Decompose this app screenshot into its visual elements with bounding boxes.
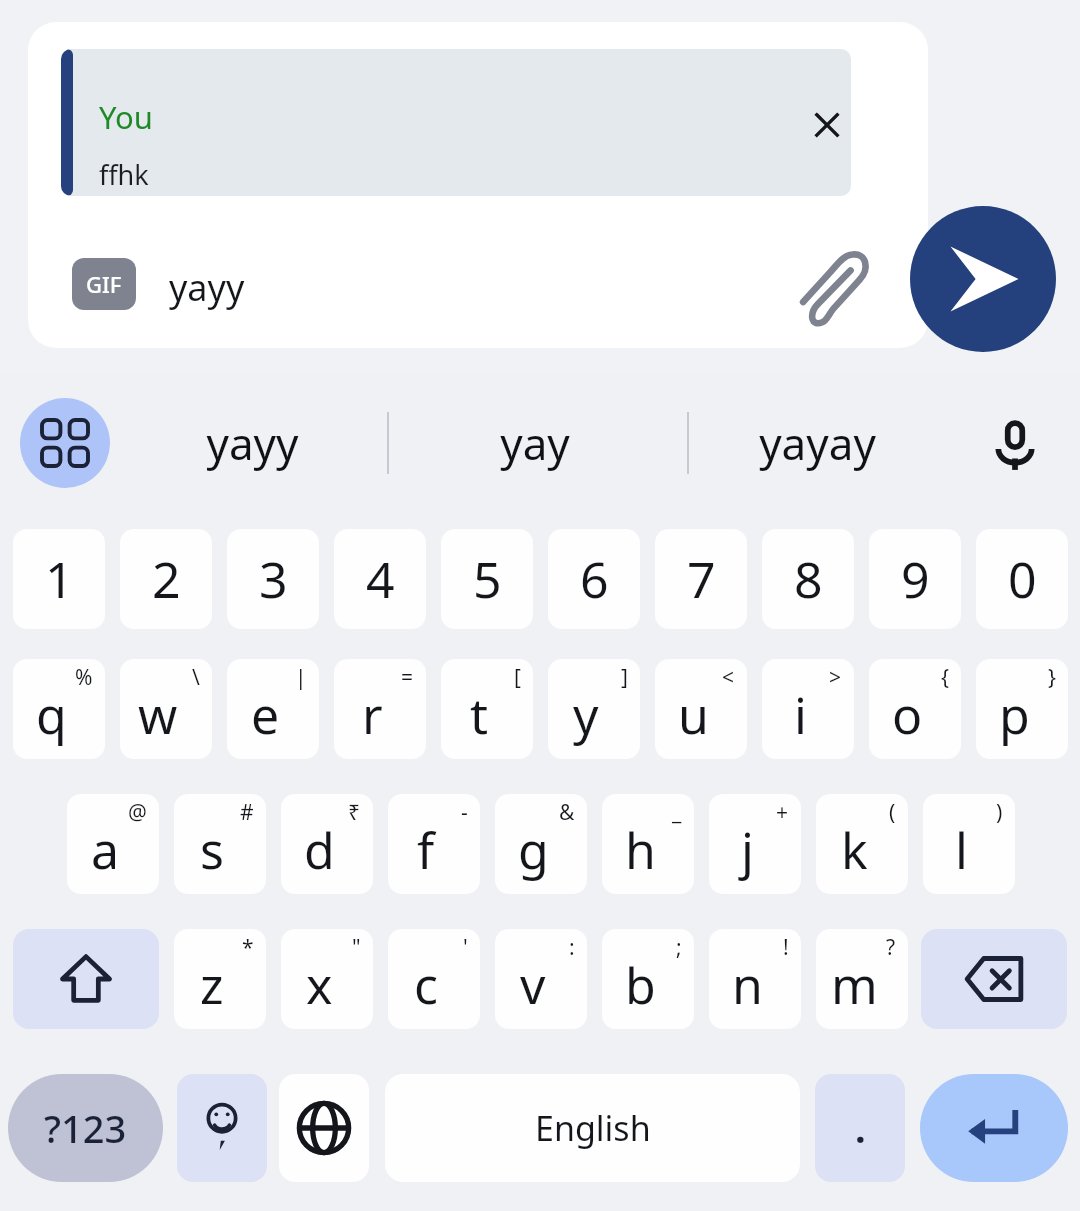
button[interactable]: b bbox=[602, 929, 694, 1029]
staticText: a bbox=[91, 816, 120, 884]
staticText: 4 bbox=[366, 545, 395, 613]
staticText: yayy bbox=[169, 263, 245, 312]
button[interactable]: z bbox=[174, 929, 266, 1029]
staticText: c bbox=[414, 951, 438, 1019]
staticText: + bbox=[776, 798, 789, 827]
button[interactable]: f bbox=[388, 794, 480, 894]
button[interactable]: 8 bbox=[762, 529, 854, 629]
button[interactable]: 0 bbox=[976, 529, 1068, 629]
staticText: yay bbox=[500, 413, 570, 473]
button[interactable]: More options bbox=[20, 398, 110, 488]
button[interactable]: r bbox=[334, 659, 426, 759]
button[interactable]: o bbox=[869, 659, 961, 759]
staticText: yayy bbox=[206, 413, 299, 473]
button[interactable]: yayay bbox=[697, 380, 937, 506]
button[interactable]: Shift bbox=[13, 929, 159, 1029]
staticText: i bbox=[794, 681, 807, 749]
button[interactable]: Backspace bbox=[921, 929, 1067, 1029]
staticText: You bbox=[99, 96, 153, 138]
staticText: ? bbox=[886, 933, 896, 962]
staticText: p bbox=[999, 681, 1030, 749]
staticText: ; bbox=[676, 933, 682, 962]
button[interactable]: 6 bbox=[548, 529, 640, 629]
staticText: h bbox=[625, 816, 656, 884]
staticText: \ bbox=[192, 663, 200, 692]
button[interactable]: 5 bbox=[441, 529, 533, 629]
button[interactable]: i bbox=[762, 659, 854, 759]
staticText: e bbox=[251, 681, 280, 749]
staticText: t bbox=[470, 681, 489, 749]
button[interactable]: You bbox=[61, 49, 851, 196]
button[interactable]: . bbox=[815, 1074, 905, 1182]
button[interactable]: 2 bbox=[120, 529, 212, 629]
button[interactable]: c bbox=[388, 929, 480, 1029]
staticText: f bbox=[417, 816, 435, 884]
button[interactable]: yay bbox=[415, 380, 655, 506]
staticText: 0 bbox=[1008, 545, 1037, 613]
staticText: . bbox=[855, 1102, 866, 1154]
staticText: k bbox=[841, 816, 868, 884]
button[interactable]: y bbox=[548, 659, 640, 759]
staticText: y bbox=[573, 681, 599, 749]
staticText: > bbox=[829, 663, 842, 692]
staticText: s bbox=[200, 816, 224, 884]
staticText: ( bbox=[889, 798, 896, 827]
button[interactable]: q bbox=[13, 659, 105, 759]
button[interactable]: 3 bbox=[227, 529, 319, 629]
staticText: 6 bbox=[580, 545, 609, 613]
button[interactable]: h bbox=[602, 794, 694, 894]
button[interactable]: yayy bbox=[132, 380, 372, 506]
staticText: - bbox=[461, 798, 468, 827]
button[interactable]: k bbox=[816, 794, 908, 894]
button[interactable]: m bbox=[816, 929, 908, 1029]
button[interactable]: v bbox=[495, 929, 587, 1029]
button[interactable]: p bbox=[976, 659, 1068, 759]
button[interactable]: 7 bbox=[655, 529, 747, 629]
button[interactable]: a bbox=[67, 794, 159, 894]
staticText: : bbox=[569, 933, 575, 962]
button[interactable]: w bbox=[120, 659, 212, 759]
button[interactable]: Change language bbox=[279, 1074, 369, 1182]
button[interactable]: x bbox=[281, 929, 373, 1029]
staticText: 2 bbox=[152, 545, 181, 613]
button[interactable]: Emoji bbox=[177, 1074, 267, 1182]
staticText: ) bbox=[996, 798, 1003, 827]
button[interactable]: Close reply bbox=[803, 101, 851, 149]
button[interactable]: 4 bbox=[334, 529, 426, 629]
button[interactable]: l bbox=[923, 794, 1015, 894]
button[interactable]: GIF bbox=[72, 258, 136, 310]
staticText: = bbox=[401, 663, 414, 692]
button[interactable]: j bbox=[709, 794, 801, 894]
staticText: yayay bbox=[759, 413, 876, 473]
staticText: ' bbox=[463, 933, 468, 962]
button[interactable]: English bbox=[385, 1074, 800, 1182]
staticText: English bbox=[535, 1105, 651, 1151]
staticText: ₹ bbox=[348, 798, 361, 827]
button[interactable]: 1 bbox=[13, 529, 105, 629]
button[interactable]: Send bbox=[910, 206, 1056, 352]
staticText: b bbox=[625, 951, 656, 1019]
button[interactable]: s bbox=[174, 794, 266, 894]
button[interactable]: t bbox=[441, 659, 533, 759]
button[interactable]: Attach file bbox=[785, 240, 881, 336]
staticText: n bbox=[732, 951, 763, 1019]
staticText: ] bbox=[621, 663, 628, 692]
staticText: & bbox=[559, 798, 575, 827]
button[interactable]: Voice input bbox=[967, 398, 1063, 494]
staticText: _ bbox=[672, 798, 682, 827]
button[interactable]: 9 bbox=[869, 529, 961, 629]
staticText: u bbox=[678, 681, 709, 749]
staticText: } bbox=[1048, 663, 1056, 692]
staticText: { bbox=[941, 663, 949, 692]
button[interactable]: Enter bbox=[920, 1074, 1068, 1182]
button[interactable]: g bbox=[495, 794, 587, 894]
button[interactable]: e bbox=[227, 659, 319, 759]
button[interactable]: d bbox=[281, 794, 373, 894]
staticText: % bbox=[75, 663, 93, 692]
staticText: < bbox=[722, 663, 735, 692]
staticText: o bbox=[892, 681, 923, 749]
button[interactable]: n bbox=[709, 929, 801, 1029]
staticText: 8 bbox=[794, 545, 823, 613]
button[interactable]: u bbox=[655, 659, 747, 759]
button[interactable]: ?123 bbox=[8, 1074, 163, 1182]
